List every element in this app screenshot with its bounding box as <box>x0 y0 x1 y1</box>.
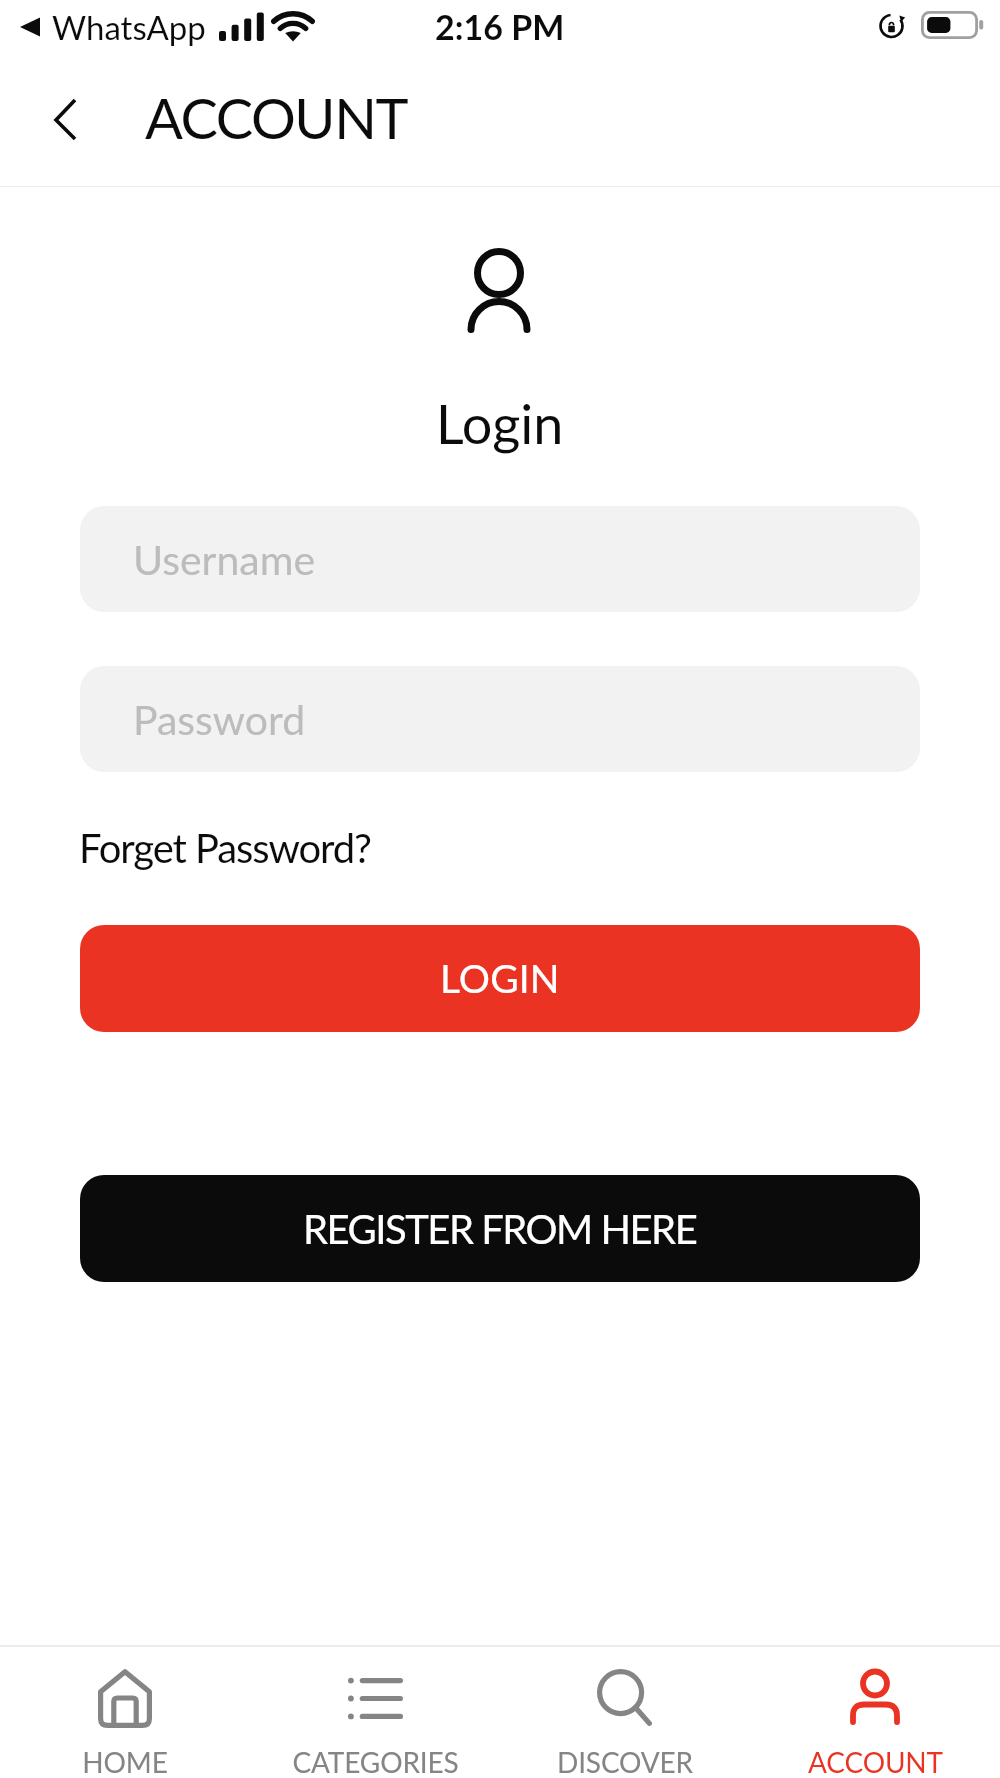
button[interactable]: Forget Password? <box>79 817 374 879</box>
staticText: CATEGORIES <box>292 1745 459 1778</box>
staticText: Password <box>133 695 306 744</box>
staticText: HOME <box>82 1745 168 1778</box>
button[interactable]: Discover <box>500 1647 750 1778</box>
staticText: 2:16 PM <box>435 6 565 47</box>
button[interactable]: LOGIN <box>80 925 920 1032</box>
staticText: LOGIN <box>440 955 560 1002</box>
staticText: Username <box>133 535 316 584</box>
button[interactable]: Categories <box>250 1647 500 1778</box>
staticText: ACCOUNT <box>808 1745 943 1778</box>
button[interactable]: Home <box>0 1647 250 1778</box>
staticText: REGISTER FROM HERE <box>303 1205 697 1253</box>
button[interactable]: Account <box>750 1647 1000 1778</box>
staticText: ACCOUNT <box>145 84 408 151</box>
button[interactable]: Username <box>80 506 920 612</box>
button[interactable]: REGISTER FROM HERE <box>80 1175 920 1282</box>
staticText: DISCOVER <box>557 1745 693 1778</box>
staticText: WhatsApp <box>52 7 206 47</box>
button[interactable]: Password <box>80 666 920 772</box>
button[interactable]: Back <box>36 90 96 150</box>
staticText: Forget Password? <box>79 824 371 872</box>
staticText: Login <box>436 391 564 456</box>
